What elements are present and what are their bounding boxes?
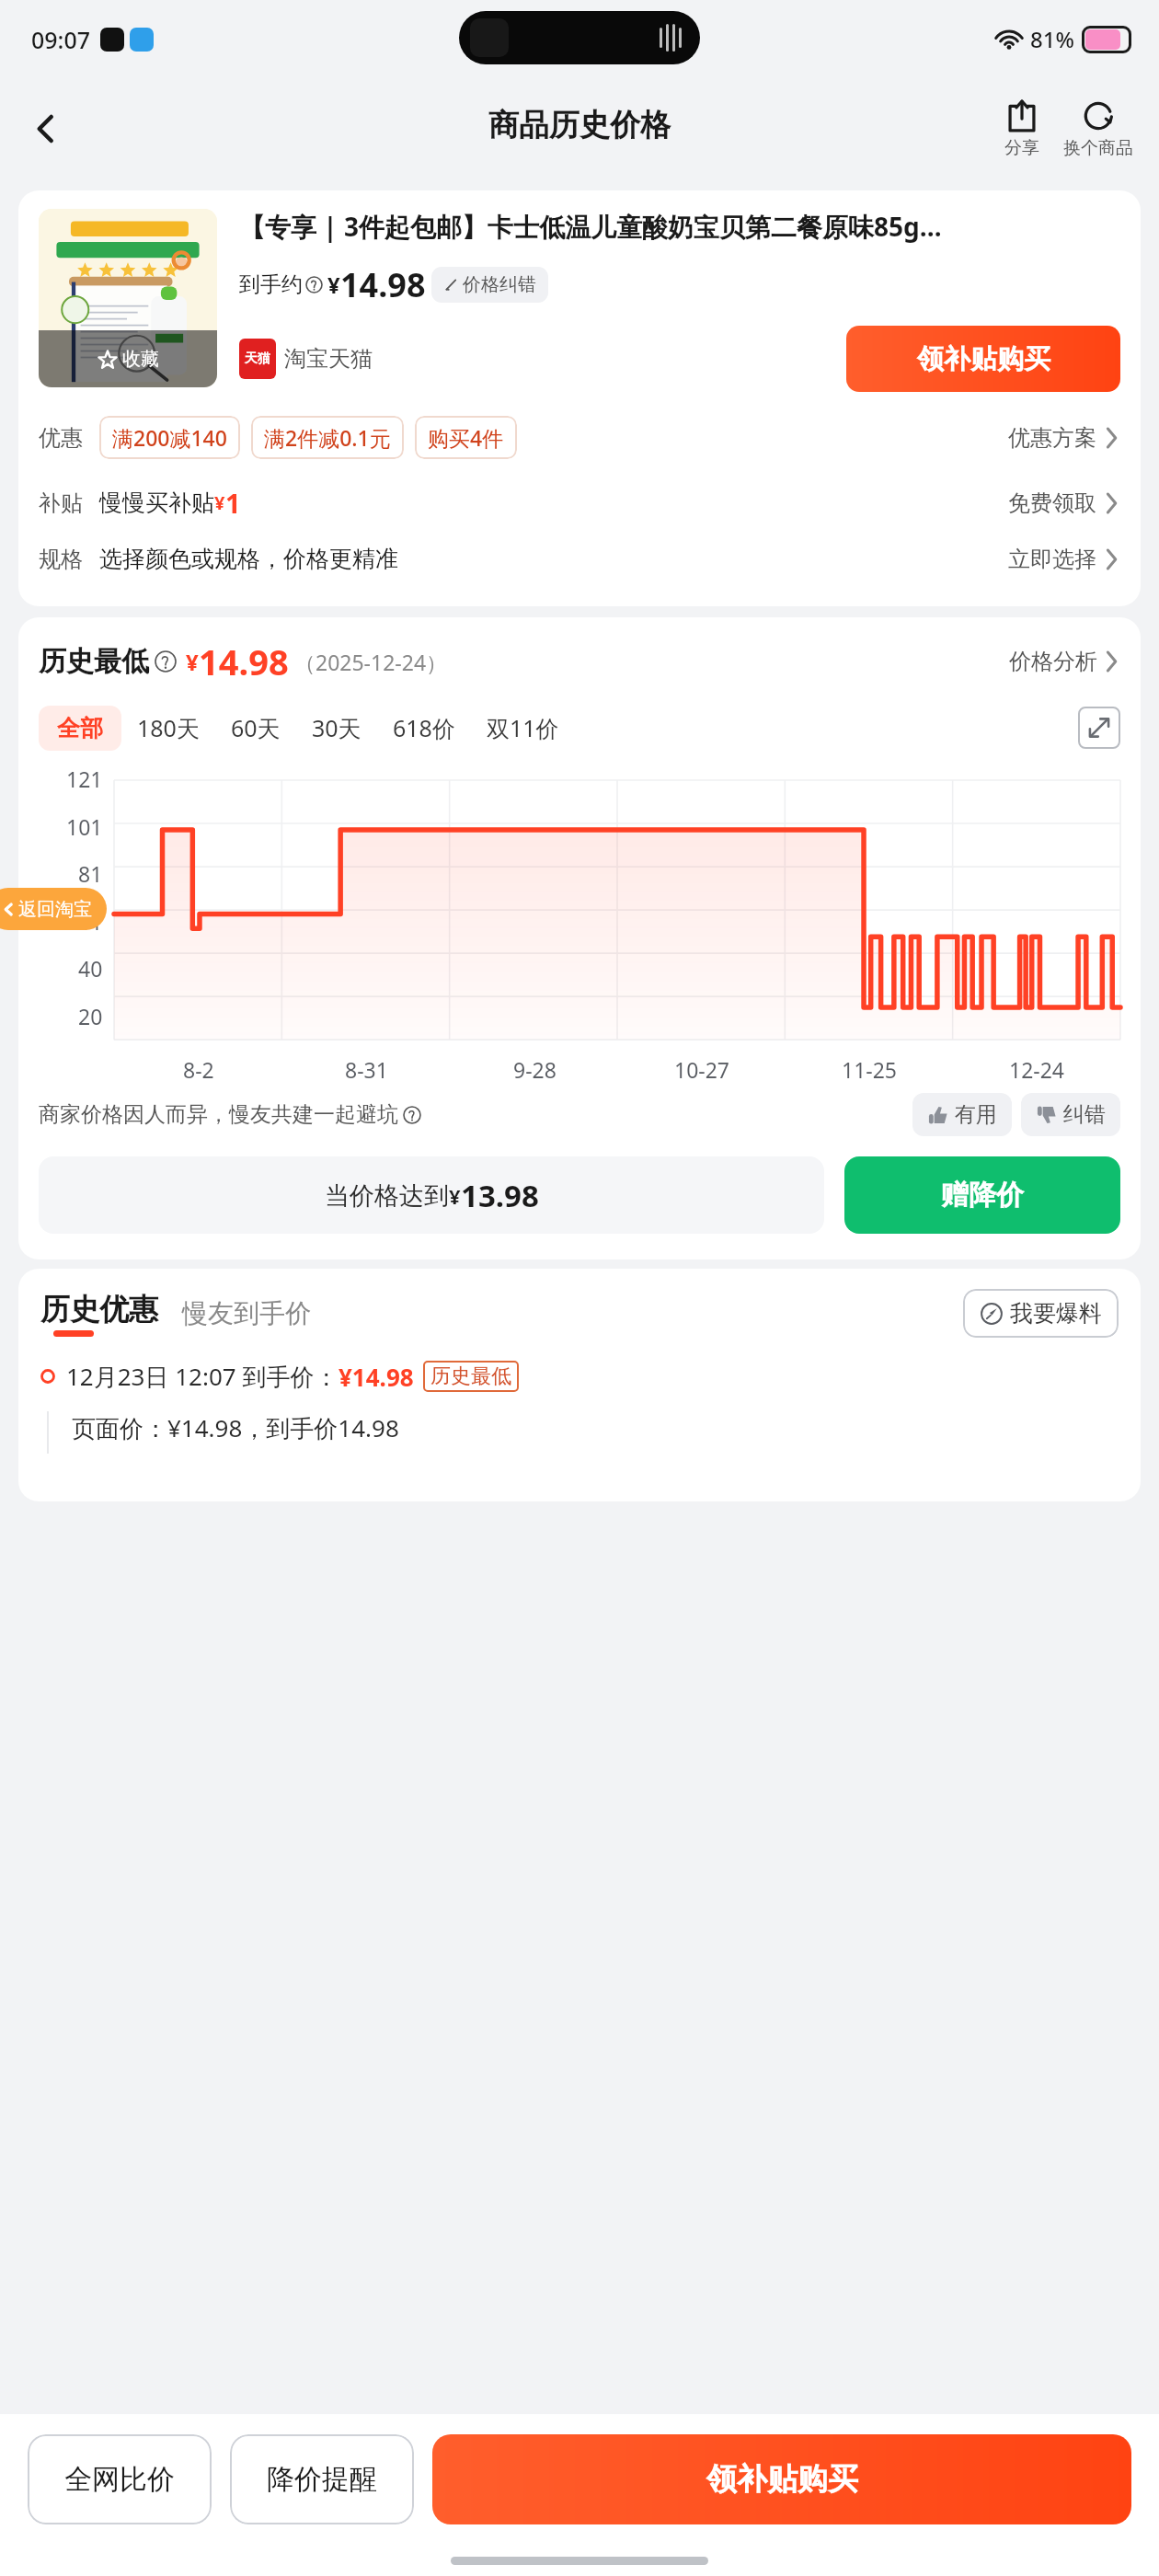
staticText: 我要爆料 (1010, 1299, 1102, 1328)
staticText: 纠错 (1063, 1101, 1106, 1128)
button[interactable]: 优惠 (39, 416, 1120, 459)
staticText: 页面价：¥14.98，到手价14.98 (72, 1411, 399, 1444)
staticText: 双11价 (487, 712, 559, 743)
button[interactable]: 降价提醒 (230, 2434, 414, 2524)
staticText: 13.98 (461, 1175, 539, 1216)
staticText: 慢友到手价 (182, 1297, 311, 1329)
button[interactable]: 换个商品 (1058, 98, 1139, 159)
button[interactable]: 补贴 (39, 485, 1120, 521)
staticText: 60天 (231, 712, 281, 743)
staticText: 11-25 (842, 1055, 898, 1084)
button[interactable]: 慢友到手价 (182, 1297, 311, 1329)
staticText: 购买4件 (428, 423, 504, 452)
staticText: 30天 (312, 712, 361, 743)
staticText: 规格 (39, 546, 83, 573)
staticText: 商家价格因人而异，慢友共建一起避坑 (39, 1101, 398, 1128)
staticText: 10-27 (674, 1055, 730, 1084)
button[interactable]: Back (18, 101, 74, 156)
staticText: 14.98 (199, 638, 289, 685)
staticText: 【专享 | 3件起包邮】卡士低温儿童酸奶宝贝第二餐原味85g… (239, 209, 942, 244)
staticText: ¥ (449, 1182, 461, 1210)
staticText: 优惠 (39, 424, 83, 452)
button[interactable]: 返回淘宝 (0, 888, 107, 930)
staticText: 赠降价 (941, 1178, 1024, 1213)
staticText: 全部 (57, 714, 103, 742)
staticText: 121 (66, 765, 103, 793)
staticText: 优惠方案 (1008, 424, 1096, 452)
staticText: 选择颜色或规格，价格更精准 (99, 545, 398, 573)
staticText: 81 (78, 859, 103, 888)
staticText: 14.98 (340, 262, 426, 307)
staticText: 历史最低 (430, 1363, 511, 1389)
staticText: 12-24 (1009, 1055, 1065, 1084)
button[interactable]: 纠错 (1021, 1093, 1120, 1136)
staticText: ¥ (327, 270, 340, 300)
staticText: 全网比价 (64, 2462, 175, 2497)
staticText: 61 (78, 907, 103, 936)
button[interactable]: 618价 (377, 704, 471, 752)
button[interactable]: 全部 (39, 706, 121, 751)
staticText: 有用 (955, 1101, 997, 1128)
button[interactable]: 当价格达到 (39, 1156, 824, 1234)
button[interactable]: 领补贴购买 (432, 2434, 1131, 2524)
staticText: 慢慢买补贴 (99, 489, 214, 517)
button[interactable]: 赠降价 (844, 1156, 1120, 1234)
staticText: 换个商品 (1063, 137, 1133, 159)
staticText: 满2件减0.1元 (264, 423, 391, 452)
staticText: 09:07 (31, 24, 91, 55)
staticText: 补贴 (39, 489, 83, 517)
staticText: 1 (225, 485, 241, 521)
staticText: ¥14.98 (339, 1361, 414, 1393)
button[interactable]: 历史优惠 (40, 1291, 158, 1337)
staticText: 价格分析 (1009, 648, 1097, 675)
staticText: 到手约 (239, 271, 303, 298)
button[interactable]: Fullscreen (1078, 707, 1120, 749)
button[interactable]: 规格 (39, 545, 1120, 573)
staticText: 618价 (393, 712, 455, 743)
button[interactable]: 我要爆料 (963, 1289, 1119, 1338)
staticText: 收藏 (122, 348, 159, 371)
staticText: 180天 (137, 712, 200, 743)
button[interactable]: 领补贴购买 (846, 326, 1120, 392)
staticText: 返回淘宝 (18, 898, 92, 921)
staticText: 20 (78, 1002, 103, 1030)
button[interactable]: 双11价 (471, 704, 575, 752)
button[interactable]: 有用 (912, 1093, 1012, 1136)
staticText: 降价提醒 (267, 2462, 377, 2497)
staticText: 领补贴购买 (706, 2460, 858, 2499)
button[interactable]: 180天 (121, 704, 215, 752)
button[interactable]: 价格纠错 (431, 267, 548, 303)
staticText: 天猫 (245, 351, 270, 367)
staticText: 8-2 (183, 1055, 214, 1084)
staticText: 历史优惠 (40, 1291, 158, 1328)
staticText: 40 (78, 954, 103, 983)
button[interactable]: 分享 (999, 98, 1045, 159)
staticText: 8-31 (345, 1055, 388, 1084)
staticText: 历史最低 (39, 644, 149, 679)
staticText: 满200减140 (112, 423, 227, 452)
button[interactable]: 60天 (215, 704, 296, 752)
staticText: 分享 (1004, 137, 1039, 159)
staticText: 立即选择 (1008, 546, 1096, 573)
staticText: 免费领取 (1008, 489, 1096, 517)
staticText: ¥ (214, 490, 225, 515)
staticText: 9-28 (513, 1055, 557, 1084)
staticText: （2025-12-24） (294, 648, 448, 676)
staticText: 81% (1030, 24, 1074, 54)
staticText: ¥ (186, 647, 199, 677)
button[interactable]: 收藏 (39, 209, 217, 387)
staticText: 当价格达到 (325, 1180, 449, 1212)
staticText: 价格纠错 (463, 273, 536, 296)
staticText: 101 (66, 812, 103, 841)
staticText: 领补贴购买 (917, 342, 1050, 376)
button[interactable]: 30天 (296, 704, 377, 752)
staticText: 淘宝天猫 (284, 345, 373, 373)
button[interactable]: 全网比价 (28, 2434, 212, 2524)
staticText: 12月23日 12:07 到手价： (66, 1360, 339, 1393)
button[interactable]: 价格分析 (1009, 648, 1120, 675)
staticText: 商品历史价格 (488, 106, 671, 144)
